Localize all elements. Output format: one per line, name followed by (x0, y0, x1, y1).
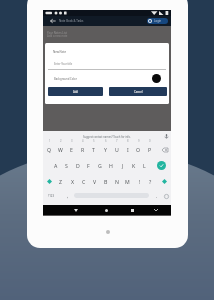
staticText: J (122, 162, 124, 169)
button[interactable]: B (100, 175, 111, 187)
staticText: 3 (71, 139, 73, 143)
staticText: E (70, 146, 73, 153)
button[interactable]: ! (134, 175, 145, 187)
staticText: Z (59, 178, 62, 185)
staticText: M (125, 178, 130, 185)
button[interactable]: Y (100, 143, 111, 155)
button[interactable]: W (55, 143, 66, 155)
staticText: Q (47, 146, 52, 153)
staticText: Enter Your title (54, 62, 73, 66)
staticText: A (54, 162, 58, 169)
button[interactable]: Enter (157, 161, 166, 170)
staticText: 5 (93, 139, 95, 143)
staticText: ?123 (48, 194, 55, 198)
staticText: V (93, 178, 97, 185)
button[interactable]: Recent apps (128, 205, 137, 215)
button[interactable]: ?123 (45, 192, 58, 200)
button[interactable]: K (128, 159, 139, 171)
button[interactable]: I (122, 143, 133, 155)
staticText: P (148, 146, 152, 153)
staticText: 8 (127, 139, 129, 143)
button[interactable]: O (133, 143, 144, 155)
staticText: K (132, 162, 136, 169)
staticText: 1 (49, 139, 51, 143)
staticText: Login (154, 19, 162, 23)
staticText: Note Book & Tasks (59, 19, 84, 23)
button[interactable]: E (66, 143, 77, 155)
button[interactable]: V (89, 175, 100, 187)
staticText: Suggest contact names? Touch for info. (83, 135, 131, 139)
staticText: , (67, 193, 69, 199)
staticText: 0 (149, 139, 151, 143)
button[interactable]: Q (44, 143, 55, 155)
button[interactable]: Emoji (162, 192, 170, 200)
staticText: Add a new note (47, 34, 68, 38)
button[interactable]: ? (145, 175, 156, 187)
button[interactable]: Choose background colour (152, 74, 161, 83)
button[interactable]: Z (55, 175, 66, 187)
staticText: Add (73, 90, 79, 94)
button[interactable]: , (64, 192, 72, 200)
staticText: H (109, 162, 113, 169)
button[interactable]: . (153, 192, 161, 200)
staticText: G (98, 162, 102, 169)
button[interactable]: J (117, 159, 128, 171)
button[interactable]: Back (71, 205, 80, 215)
button[interactable]: X (67, 175, 78, 187)
staticText: C (82, 178, 86, 185)
staticText: N (115, 178, 119, 185)
staticText: W (58, 146, 63, 153)
staticText: . (156, 193, 158, 199)
button[interactable]: S (61, 159, 72, 171)
staticText: Your Notes List (47, 31, 67, 35)
staticText: L (143, 162, 146, 169)
button[interactable]: C (78, 175, 89, 187)
button[interactable]: A (50, 159, 61, 171)
button[interactable]: R (77, 143, 88, 155)
button[interactable]: M (122, 175, 133, 187)
staticText: 9 (138, 139, 140, 143)
button[interactable]: D (72, 159, 83, 171)
button[interactable]: U (111, 143, 122, 155)
staticText: I (127, 146, 129, 153)
staticText: O (136, 146, 141, 153)
staticText: ? (149, 178, 152, 185)
staticText: 6 (105, 139, 107, 143)
staticText: X (71, 178, 75, 185)
staticText: New Note (53, 50, 66, 54)
button[interactable]: L (139, 159, 150, 171)
staticText: 7 (116, 139, 118, 143)
button[interactable]: F (83, 159, 94, 171)
button[interactable]: Hide keyboard (151, 205, 160, 215)
staticText: Cancel (134, 90, 143, 94)
staticText: T (92, 146, 95, 153)
button[interactable]: Backspace (160, 145, 169, 154)
button[interactable]: Shift (45, 177, 53, 185)
button[interactable]: Cancel (109, 87, 167, 96)
button[interactable]: Home (102, 205, 111, 215)
staticText: 4 (82, 139, 84, 143)
button[interactable]: G (94, 159, 105, 171)
button[interactable]: Add (48, 87, 103, 96)
staticText: Y (104, 146, 107, 153)
staticText: 2 (60, 139, 62, 143)
other: Voice input (164, 134, 169, 139)
button[interactable]: N (111, 175, 122, 187)
button[interactable]: H (105, 159, 116, 171)
staticText: S (65, 162, 68, 169)
button[interactable]: P (144, 143, 155, 155)
staticText: R (81, 146, 85, 153)
staticText: U (115, 146, 119, 153)
staticText: ! (139, 178, 141, 185)
staticText: D (76, 162, 80, 169)
button[interactable]: Login (147, 18, 168, 24)
button[interactable]: T (88, 143, 99, 155)
staticText: F (87, 162, 90, 169)
staticText: Background Color (54, 77, 77, 81)
button[interactable]: Navigate up (48, 16, 58, 26)
staticText: B (104, 178, 108, 185)
button[interactable]: Backspace (160, 177, 168, 185)
